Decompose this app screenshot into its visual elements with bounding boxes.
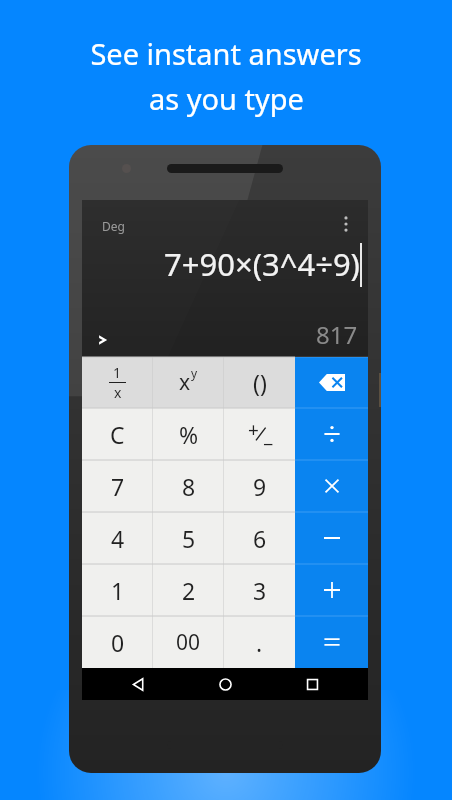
button[interactable]: 3 (224, 564, 295, 616)
button[interactable]: 00 (153, 616, 224, 668)
staticText: 817 (316, 318, 358, 351)
button[interactable]: = (295, 616, 368, 668)
button[interactable]: 7 (82, 460, 153, 512)
button[interactable]: 5 (153, 512, 224, 564)
button[interactable]: Home (209, 668, 241, 700)
button[interactable]: ÷ (295, 408, 368, 460)
staticText: as you type (149, 79, 304, 118)
staticText: + (248, 417, 259, 443)
button[interactable]: More options (332, 210, 360, 238)
button[interactable]: 6 (224, 512, 295, 564)
staticText: See instant answers (90, 34, 362, 73)
staticText: Deg (102, 218, 125, 234)
button[interactable]: 0 (82, 616, 153, 668)
staticText: 0 (111, 627, 125, 658)
button[interactable]: 1 (82, 564, 153, 616)
button[interactable]: + (224, 408, 295, 460)
button[interactable]: 2 (153, 564, 224, 616)
button[interactable]: 1 (82, 357, 153, 408)
staticText: _ (264, 422, 273, 448)
staticText: 7+90×(3^4÷9) (164, 243, 360, 285)
button[interactable]: × (295, 460, 368, 512)
staticText: 7 (111, 471, 125, 502)
staticText: 1 (111, 575, 125, 606)
staticText: 6 (253, 523, 267, 554)
staticText: . (256, 627, 263, 658)
staticText: () (253, 367, 267, 398)
staticText: 8 (182, 471, 196, 502)
staticText: C (110, 419, 125, 450)
button[interactable]: x (153, 357, 224, 408)
button[interactable]: del (295, 357, 368, 408)
button[interactable]: 8 (153, 460, 224, 512)
staticText: 9 (253, 471, 267, 502)
button[interactable]: () (224, 357, 295, 408)
button[interactable]: Back (122, 668, 154, 700)
button[interactable]: − (295, 512, 368, 564)
staticText: 4 (111, 523, 125, 554)
button[interactable]: Show history (88, 325, 118, 355)
button[interactable]: Deg (98, 214, 129, 238)
staticText: 00 (176, 628, 201, 657)
staticText: 1 (113, 363, 122, 382)
staticText: x (179, 368, 191, 397)
button[interactable]: Recents (296, 668, 328, 700)
staticText: % (179, 419, 199, 450)
staticText: x (114, 383, 122, 402)
button[interactable]: + (295, 564, 368, 616)
button[interactable]: 9 (224, 460, 295, 512)
button[interactable]: . (224, 616, 295, 668)
button[interactable]: C (82, 408, 153, 460)
button[interactable]: 4 (82, 512, 153, 564)
staticText: y (191, 365, 198, 381)
button[interactable]: % (153, 408, 224, 460)
staticText: 3 (253, 575, 267, 606)
staticText: 5 (182, 523, 196, 554)
staticText: 2 (182, 575, 196, 606)
